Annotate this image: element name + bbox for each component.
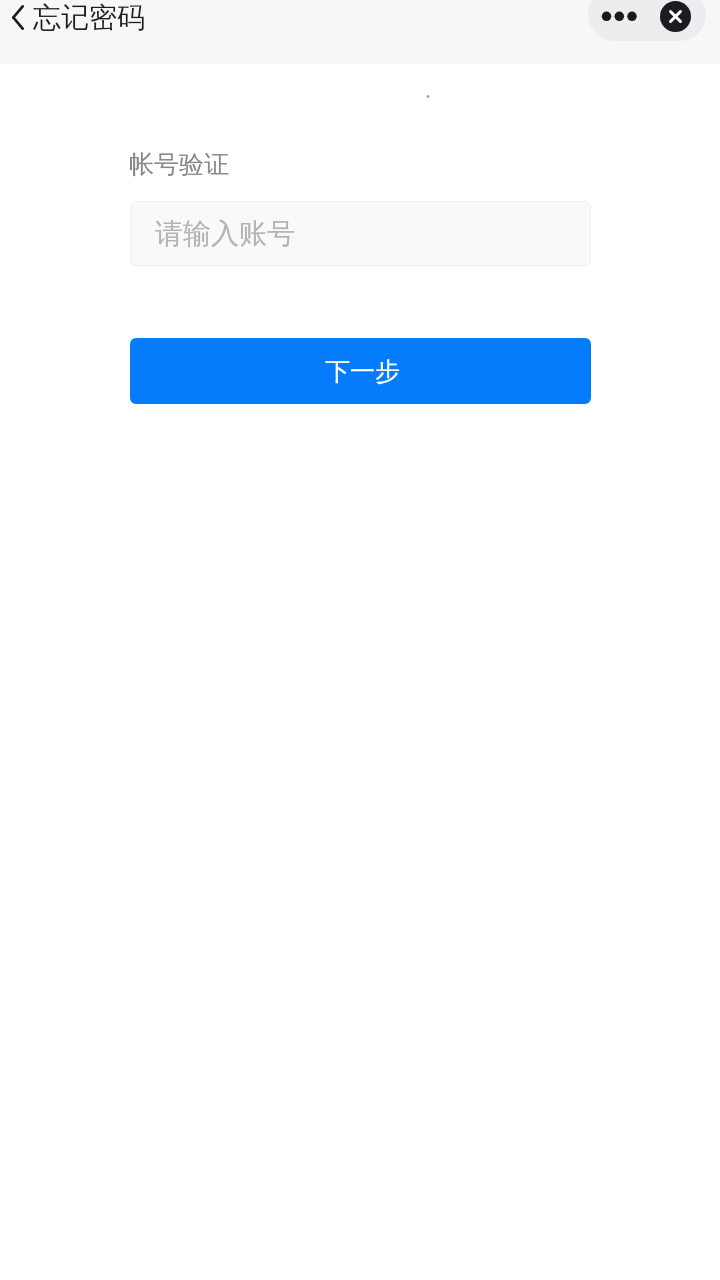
button[interactable]: Back [12, 0, 145, 34]
staticText: 帐号验证 [129, 149, 229, 180]
button[interactable]: 请输入账号 [130, 201, 591, 266]
button[interactable]: Close [660, 1, 691, 32]
staticText: 下一步 [325, 356, 400, 387]
button[interactable]: 下一步 [130, 338, 591, 404]
staticText: 忘记密码 [33, 0, 145, 34]
staticText: 请输入账号 [155, 216, 295, 251]
button[interactable]: More options [588, 0, 645, 41]
